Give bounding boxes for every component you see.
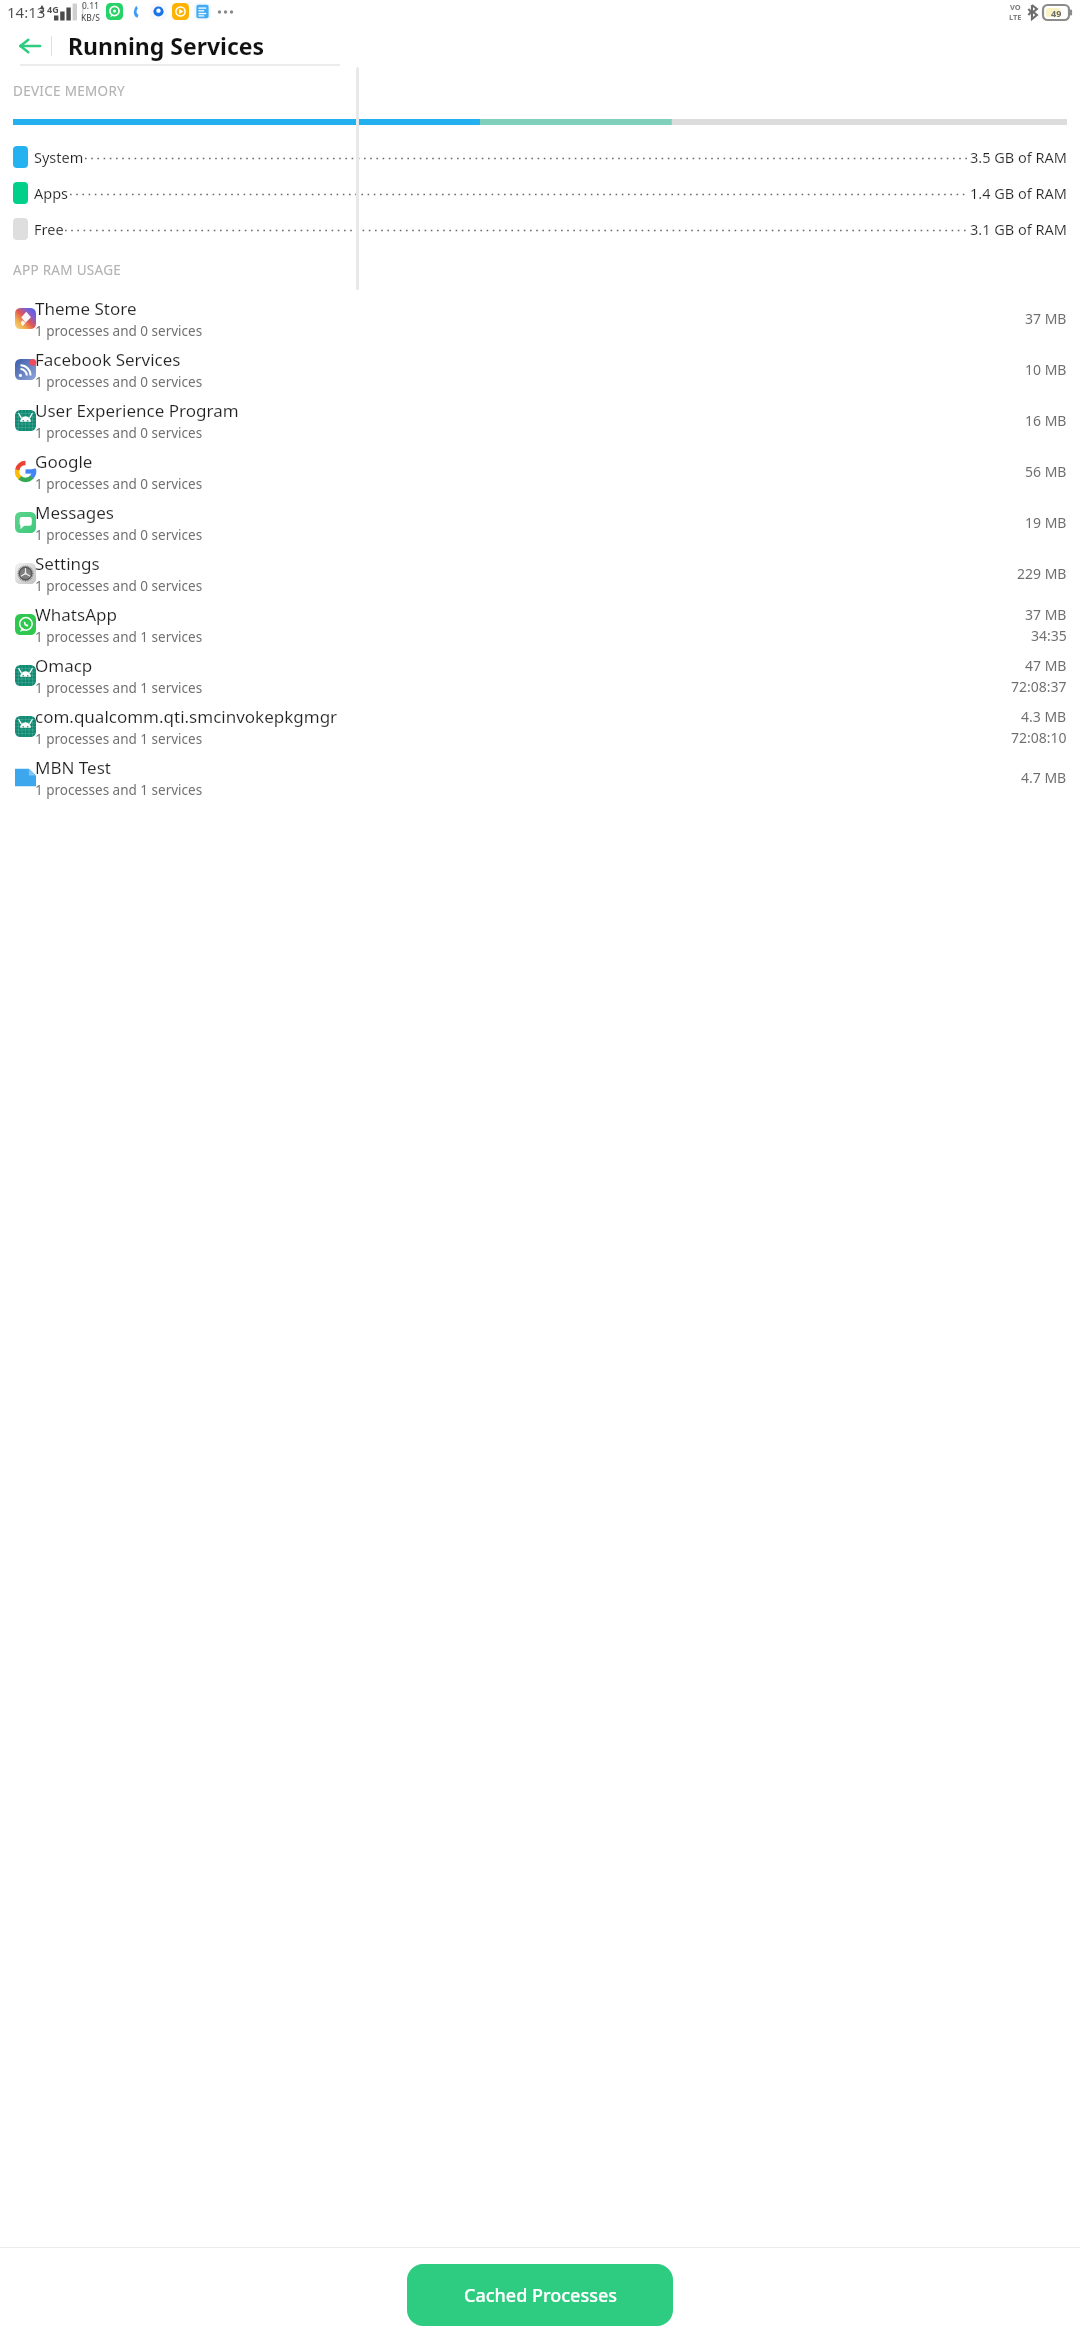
staticText: Settings [35,552,100,575]
button[interactable]: System [0,139,1080,175]
button[interactable]: MBN Test [0,752,1080,803]
staticText: 72:08:10 [1011,728,1067,747]
staticText: 10 MB [1025,360,1067,379]
staticText: Facebook Services [35,348,181,371]
staticText: 1 processes and 0 services [35,424,203,442]
button[interactable]: User Experience Program [0,395,1080,446]
staticText: Running Services [68,30,265,61]
staticText: 14:13 [7,2,46,22]
staticText: Theme Store [35,297,137,320]
staticText: 49 [1051,7,1062,19]
staticText: 4.3 MB [1021,707,1067,726]
staticText: 3.1 GB of RAM [970,219,1067,239]
staticText: System [34,147,84,167]
staticText: MBN Test [35,756,111,779]
staticText: 19 MB [1025,513,1067,532]
button[interactable]: Google [0,446,1080,497]
staticText: com.qualcomm.qti.smcinvokepkgmgr [35,705,338,728]
staticText: 16 MB [1025,411,1067,430]
staticText: 56 MB [1025,462,1067,481]
staticText: 1 processes and 1 services [35,628,203,646]
staticText: DEVICE MEMORY [13,82,126,100]
staticText: VO [1010,2,1021,12]
button[interactable]: Theme Store [0,293,1080,344]
staticText: APP RAM USAGE [13,261,122,279]
staticText: KB/S [81,12,100,23]
staticText: 37 MB [1025,309,1067,328]
button[interactable]: Apps [0,175,1080,211]
staticText: 1 processes and 0 services [35,526,203,544]
staticText: 1 processes and 0 services [35,322,203,340]
staticText: 1 processes and 0 services [35,577,203,595]
staticText: LTE [1009,12,1022,22]
button[interactable]: Cached Processes [407,2264,673,2326]
button[interactable]: com.qualcomm.qti.smcinvokepkgmgr [0,701,1080,752]
staticText: Omacp [35,654,93,677]
staticText: 229 MB [1017,564,1067,583]
staticText: Messages [35,501,115,524]
button[interactable]: Back [9,25,51,67]
staticText: 34:35 [1031,626,1067,645]
staticText: User Experience Program [35,399,239,422]
button[interactable]: Settings [0,548,1080,599]
button[interactable]: Omacp [0,650,1080,701]
staticText: 72:08:37 [1011,677,1067,696]
staticText: Cached Processes [464,2283,617,2308]
staticText: 4G [47,3,59,15]
staticText: 1 processes and 0 services [35,475,203,493]
staticText: 47 MB [1025,656,1067,675]
staticText: Apps [34,183,69,203]
staticText: WhatsApp [35,603,117,626]
button[interactable]: Free [0,211,1080,247]
staticText: Free [34,219,64,239]
staticText: Google [35,450,93,473]
button[interactable]: Messages [0,497,1080,548]
staticText: 1 processes and 0 services [35,373,203,391]
button[interactable]: Facebook Services [0,344,1080,395]
staticText: 1 processes and 1 services [35,679,203,697]
button[interactable]: WhatsApp [0,599,1080,650]
staticText: 0.11 [82,0,99,12]
staticText: 37 MB [1025,605,1067,624]
staticText: 3.5 GB of RAM [970,147,1067,167]
staticText: 1 processes and 1 services [35,781,203,799]
staticText: 4.7 MB [1021,768,1067,787]
staticText: 1.4 GB of RAM [970,183,1067,203]
staticText: 1 processes and 1 services [35,730,203,748]
